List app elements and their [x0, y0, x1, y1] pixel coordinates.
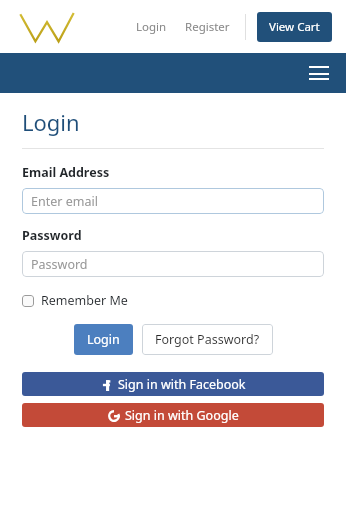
- staticText: Forgot Password?: [155, 331, 260, 348]
- staticText: Password: [22, 227, 82, 244]
- staticText: Register: [185, 19, 230, 35]
- button[interactable]: Register: [179, 13, 236, 41]
- button[interactable]: Login: [74, 324, 133, 355]
- staticText: Enter email: [31, 193, 98, 210]
- staticText: Remember Me: [41, 292, 128, 309]
- staticText: Email Address: [22, 164, 110, 181]
- button[interactable]: Sign in with Google: [22, 403, 324, 427]
- button[interactable]: View Cart: [257, 12, 332, 42]
- button[interactable]: Sign in with Facebook: [22, 372, 324, 396]
- button[interactable]: Home: [18, 7, 76, 47]
- staticText: Login: [22, 107, 80, 137]
- staticText: Login: [136, 19, 167, 35]
- staticText: Login: [87, 331, 120, 348]
- button[interactable]: Password: [22, 251, 324, 277]
- staticText: Sign in with Google: [125, 407, 239, 424]
- staticText: Password: [31, 256, 88, 273]
- staticText: Sign in with Facebook: [118, 376, 246, 393]
- button[interactable]: Remember Me: [22, 290, 128, 311]
- button[interactable]: Login: [130, 13, 173, 41]
- button[interactable]: Menu: [304, 58, 334, 88]
- button[interactable]: Enter email: [22, 188, 324, 214]
- staticText: View Cart: [269, 19, 320, 35]
- button[interactable]: Forgot Password?: [142, 324, 273, 355]
